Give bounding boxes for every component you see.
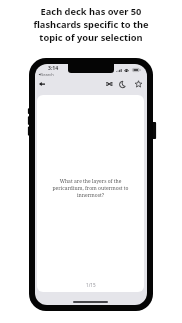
- staticText: 3:14: [48, 65, 59, 72]
- button[interactable]: Dark mode: [117, 78, 129, 90]
- button[interactable]: Favorite: [132, 78, 144, 90]
- staticText: Each deck has over 50 flashcards specifi…: [0, 5, 182, 44]
- button[interactable]: Shuffle: [103, 78, 115, 90]
- button[interactable]: Back: [36, 78, 48, 90]
- staticText: What are the layers of the pericardium, …: [52, 178, 129, 199]
- button[interactable]: What are the layers of the pericardium, …: [37, 95, 144, 292]
- staticText: 1/15: [86, 282, 96, 288]
- staticText: Search: [41, 72, 54, 77]
